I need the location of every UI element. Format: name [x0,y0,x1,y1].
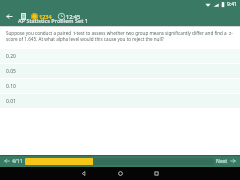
button[interactable]: 12:45 [57,13,82,20]
button[interactable]: Recent apps [150,167,163,180]
staticText: Suppose you conduct a paired t-test to a… [6,30,234,43]
staticText: 4/11 [12,158,23,165]
button[interactable]: Back [2,9,16,23]
button[interactable]: 0.01 [0,94,240,109]
staticText: 0.01 [6,98,16,105]
staticText: 12:45 [66,13,81,20]
button[interactable]: Back [77,167,90,180]
button[interactable]: Next question [228,156,238,166]
button[interactable]: 0.05 [0,64,240,79]
staticText: AP Statistics Problem Set 1 [18,17,88,24]
staticText: 9:41 [227,1,237,8]
button[interactable]: Home [114,167,127,180]
staticText: 0.10 [6,83,16,90]
button[interactable]: 1234 [30,13,53,20]
button[interactable]: 0.20 [0,49,240,64]
button[interactable]: 0.10 [0,79,240,94]
staticText: 1234 [39,13,52,20]
button[interactable]: Notes [18,11,29,22]
button[interactable]: Previous question [2,156,12,166]
staticText: 0.05 [6,68,16,75]
staticText: 0.20 [6,53,16,60]
staticText: Next [216,158,228,165]
